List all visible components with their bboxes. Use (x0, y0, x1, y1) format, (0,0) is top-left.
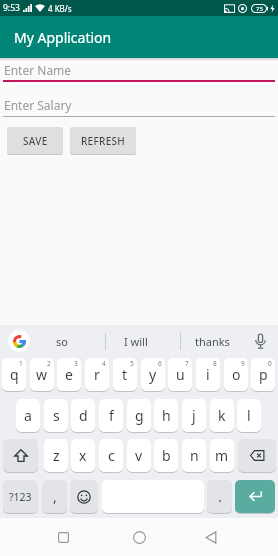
staticText: 1 (19, 359, 23, 368)
button[interactable]: d (71, 399, 95, 432)
button[interactable]: z (44, 439, 68, 472)
button[interactable]: , (42, 480, 67, 513)
staticText: 4 (102, 359, 106, 368)
button[interactable]: SAVE (7, 127, 63, 154)
staticText: 5 (130, 359, 134, 368)
button[interactable]: . (207, 480, 232, 513)
staticText: i (206, 365, 210, 384)
staticText: 6 (158, 359, 162, 368)
staticText: SAVE (23, 134, 48, 148)
button[interactable]: e (57, 358, 81, 391)
button[interactable]: h (154, 399, 178, 432)
staticText: Enter Name (4, 62, 72, 78)
staticText: o (232, 365, 241, 384)
staticText: 2 (47, 359, 51, 368)
button[interactable]: so (36, 325, 88, 358)
button[interactable]: v (127, 439, 151, 472)
button[interactable]: g (127, 399, 151, 432)
button[interactable]: Enter Salary (0, 97, 278, 113)
staticText: l (247, 406, 251, 425)
button[interactable]: k (210, 399, 234, 432)
button[interactable]: b (154, 439, 178, 472)
staticText: so (56, 334, 68, 349)
staticText: REFRESH (81, 134, 126, 148)
staticText: 0 (268, 359, 272, 368)
staticText: n (190, 446, 199, 465)
button[interactable]: I will (106, 325, 166, 358)
staticText: u (176, 365, 185, 384)
staticText: 7 (185, 359, 189, 368)
staticText: 9 (241, 359, 245, 368)
button[interactable]: n (182, 439, 206, 472)
staticText: 9:53 (3, 2, 20, 14)
button[interactable]: ?123 (3, 480, 38, 513)
staticText: y (149, 365, 157, 384)
button[interactable]: o (224, 358, 248, 391)
button[interactable] (238, 439, 276, 472)
staticText: I will (124, 334, 148, 349)
button[interactable] (70, 480, 98, 513)
button[interactable]: t (113, 358, 137, 391)
button[interactable]: r (85, 358, 109, 391)
button[interactable]: Enter Name (0, 62, 278, 78)
staticText: k (218, 406, 226, 425)
staticText: b (162, 446, 171, 465)
button[interactable]: l (237, 399, 261, 432)
button[interactable]: f (99, 399, 123, 432)
button[interactable] (235, 480, 275, 513)
staticText: e (65, 365, 73, 384)
button[interactable]: thanks (181, 325, 243, 358)
staticText: 8 (213, 359, 217, 368)
button[interactable] (118, 518, 160, 556)
staticText: , (53, 487, 57, 506)
button[interactable]: j (182, 399, 206, 432)
staticText: j (192, 406, 196, 425)
button[interactable]: w (30, 358, 54, 391)
button[interactable]: p (251, 358, 275, 391)
staticText: c (108, 446, 115, 465)
staticText: q (10, 365, 19, 384)
staticText: ?123 (9, 490, 32, 504)
staticText: thanks (195, 334, 230, 349)
button[interactable] (8, 330, 30, 352)
button[interactable]: a (16, 399, 40, 432)
button[interactable]: u (168, 358, 192, 391)
staticText: v (135, 446, 143, 465)
button[interactable] (190, 518, 232, 556)
staticText: m (215, 446, 229, 465)
staticText: My Application (14, 28, 112, 47)
button[interactable]: s (44, 399, 68, 432)
staticText: x (79, 446, 87, 465)
staticText: . (218, 487, 222, 506)
staticText: 75 (256, 5, 263, 13)
staticText: h (162, 406, 171, 425)
staticText: t (122, 365, 128, 384)
button[interactable]: y (141, 358, 165, 391)
staticText: r (94, 365, 100, 384)
staticText: Enter Salary (4, 97, 72, 113)
staticText: g (135, 406, 144, 425)
staticText: 3 (74, 359, 78, 368)
button[interactable]: x (71, 439, 95, 472)
staticText: f (109, 406, 114, 425)
staticText: w (36, 365, 48, 384)
button[interactable]: m (210, 439, 234, 472)
button[interactable]: c (99, 439, 123, 472)
button[interactable] (3, 439, 38, 472)
staticText: d (79, 406, 88, 425)
button[interactable] (248, 328, 272, 355)
staticText: p (259, 365, 268, 384)
staticText: s (53, 406, 60, 425)
button[interactable]: i (196, 358, 220, 391)
staticText: 4 KB/s (48, 3, 72, 14)
button[interactable]: q (2, 358, 26, 391)
button[interactable] (42, 518, 84, 556)
button[interactable]: REFRESH (70, 127, 136, 154)
staticText: a (24, 406, 32, 425)
staticText: z (53, 446, 60, 465)
